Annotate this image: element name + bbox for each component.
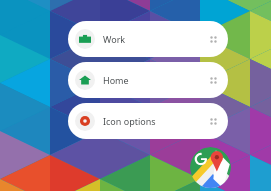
staticText: Icon options bbox=[103, 115, 156, 127]
button[interactable]: Icon options bbox=[68, 103, 228, 139]
button[interactable]: Google Maps bbox=[190, 147, 231, 188]
button[interactable]: Home bbox=[68, 62, 228, 98]
button[interactable]: Work bbox=[68, 21, 228, 57]
staticText: Work bbox=[103, 33, 126, 45]
staticText: Home bbox=[103, 74, 129, 86]
